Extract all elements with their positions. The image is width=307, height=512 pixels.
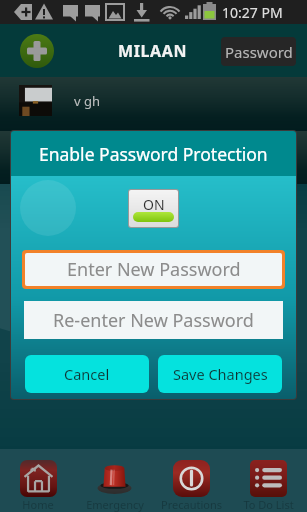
- staticText: Precautions: [161, 497, 222, 512]
- button[interactable]: Add: [20, 34, 54, 68]
- button[interactable]: v gh: [0, 77, 307, 131]
- button[interactable]: Cancel: [25, 355, 149, 393]
- staticText: Enter New Password: [67, 257, 241, 282]
- button[interactable]: Password: [221, 37, 296, 66]
- staticText: Enable Password Protection: [39, 142, 268, 166]
- button[interactable]: Home: [0, 449, 76, 512]
- button[interactable]: Enter New Password: [25, 253, 282, 286]
- staticText: 10:27 PM: [222, 3, 283, 22]
- button[interactable]: Precautions: [153, 449, 230, 512]
- staticText: Save Changes: [173, 364, 268, 384]
- button[interactable]: [0, 131, 307, 184]
- button[interactable]: Re-enter New Password: [24, 301, 283, 339]
- button[interactable]: To Do List: [230, 449, 307, 512]
- staticText: Home: [22, 497, 54, 512]
- staticText: Emergency: [86, 497, 144, 512]
- staticText: Cancel: [64, 364, 110, 384]
- button[interactable]: Emergency: [76, 449, 153, 512]
- staticText: MILAAN: [118, 40, 188, 62]
- staticText: v gh: [74, 92, 101, 110]
- staticText: Password: [225, 42, 293, 62]
- staticText: ON: [143, 195, 165, 214]
- staticText: Re-enter New Password: [53, 308, 254, 333]
- button[interactable]: Save Changes: [158, 355, 282, 393]
- button[interactable]: ON: [129, 190, 178, 227]
- staticText: To Do List: [243, 497, 294, 512]
